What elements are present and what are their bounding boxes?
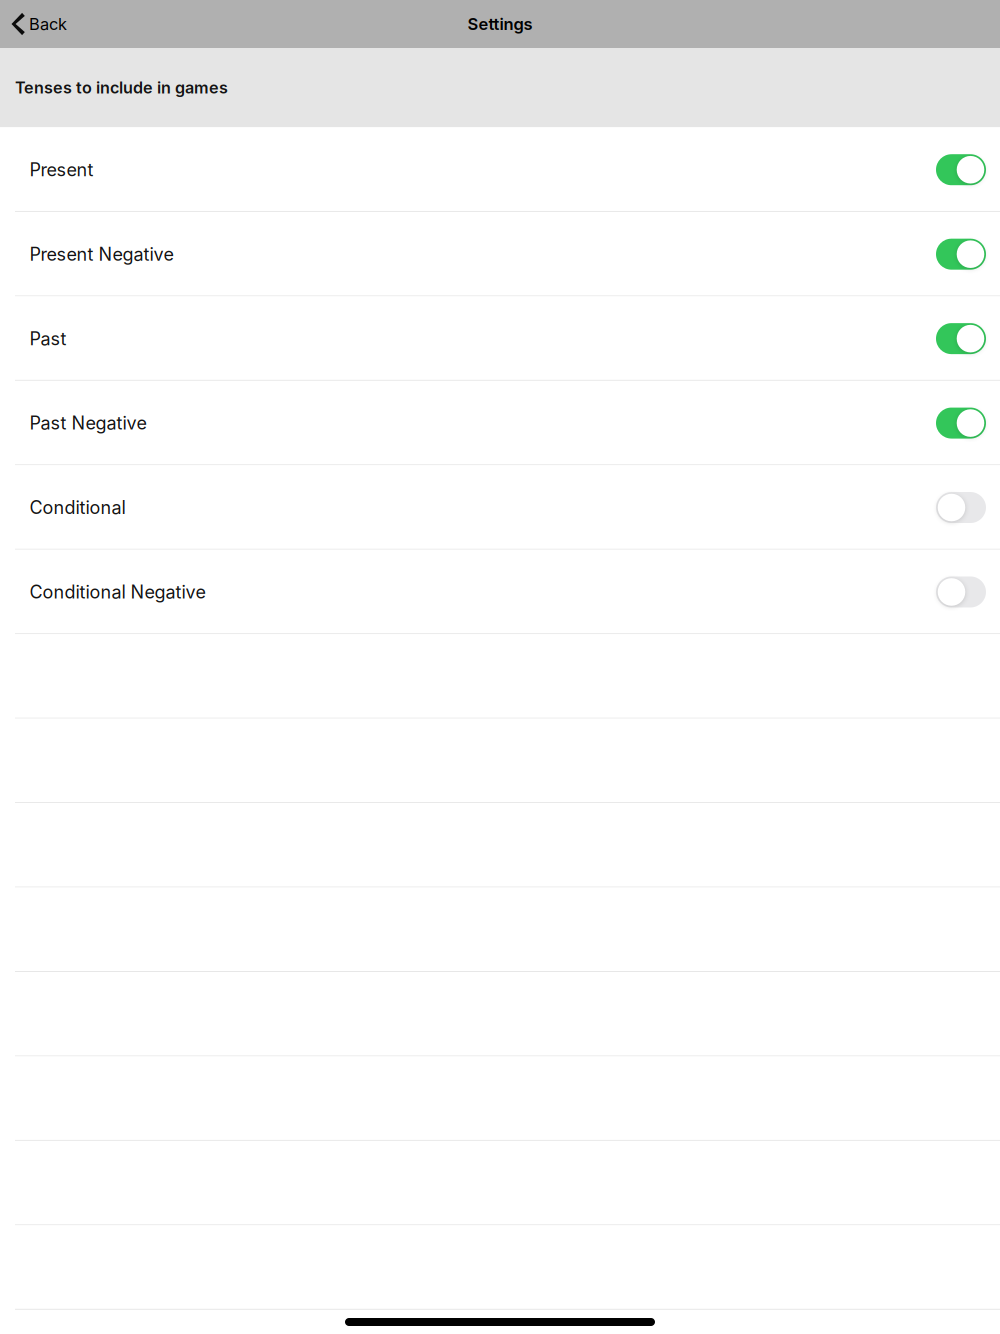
staticText: Present Negative [30,243,174,265]
staticText: Past Negative [30,412,147,434]
button[interactable]: Present [0,127,1000,212]
staticText: Past [30,328,67,349]
button[interactable]: Past Negative [0,381,1000,465]
staticText: Conditional Negative [30,581,206,603]
button[interactable]: Conditional Negative [0,550,1000,634]
staticText: Tenses to include in games [15,78,228,97]
staticText: Settings [467,14,532,34]
button[interactable]: Past [0,296,1000,381]
button[interactable]: Back [0,0,77,48]
staticText: Conditional [30,497,126,518]
staticText: Back [29,14,67,34]
staticText: Present [30,159,94,181]
button[interactable]: Present Negative [0,212,1000,296]
button[interactable]: Conditional [0,465,1000,550]
